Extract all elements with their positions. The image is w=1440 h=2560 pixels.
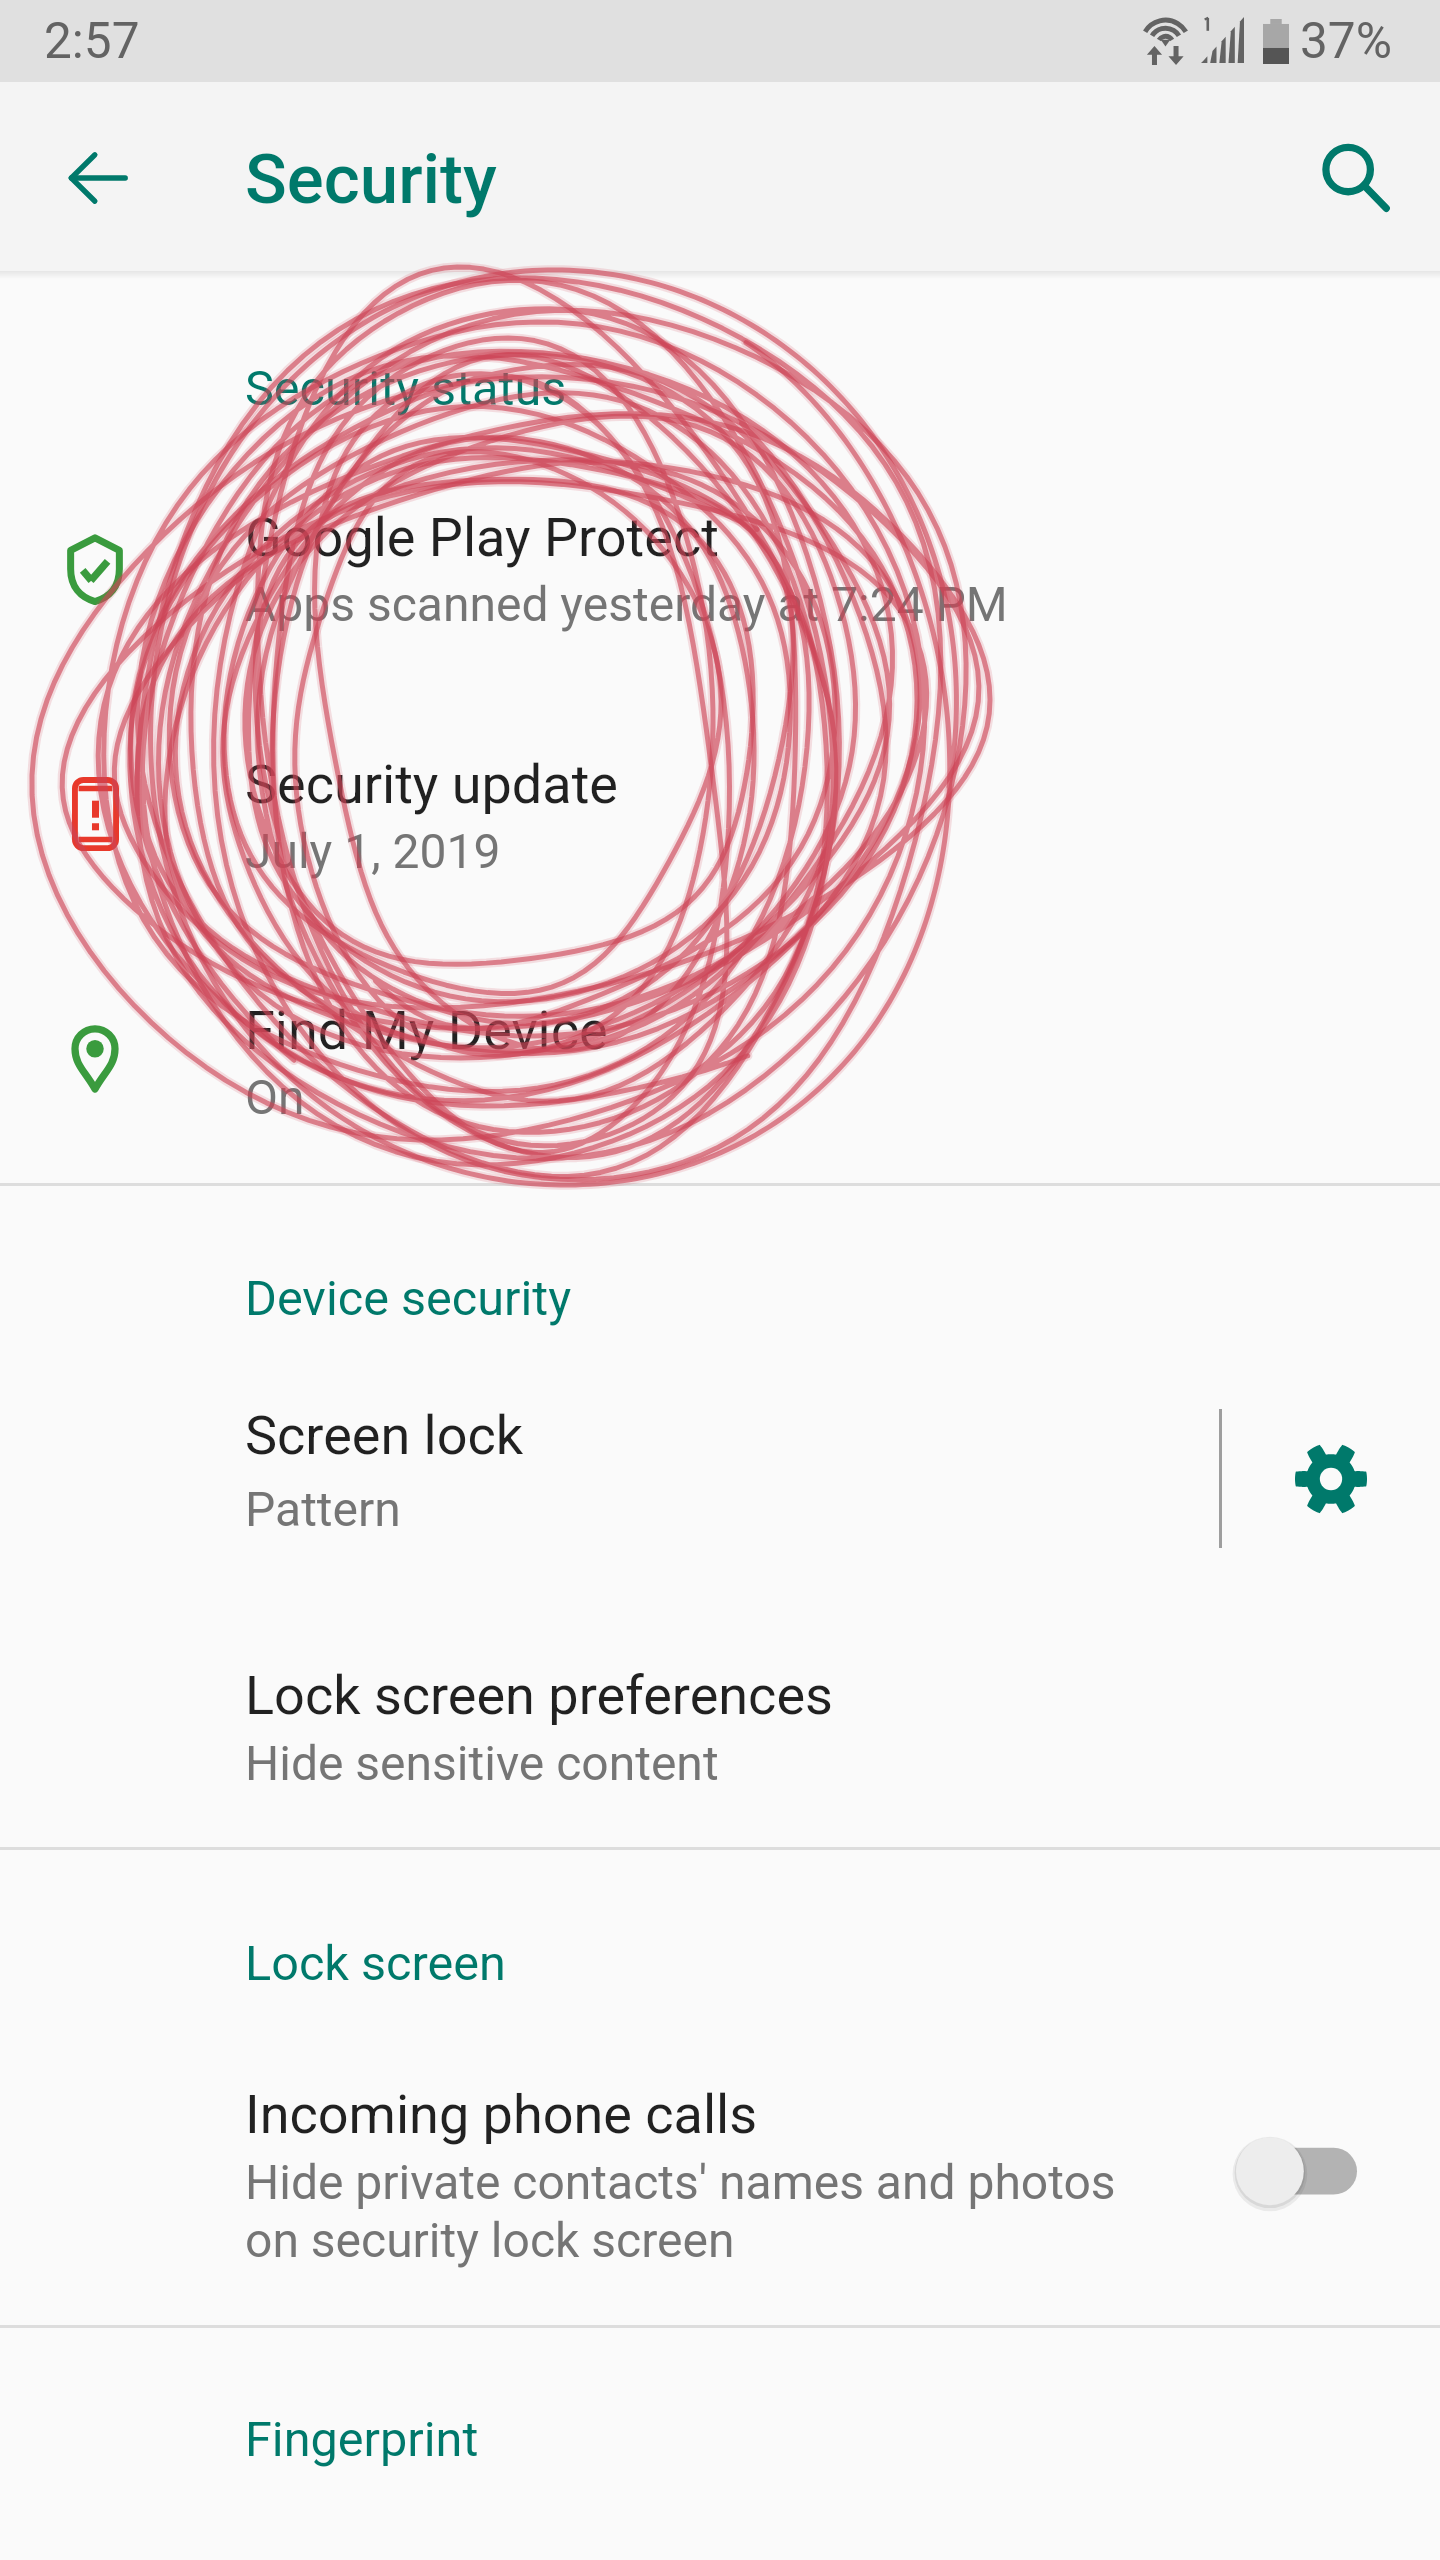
button[interactable]: Google Play Protect — [0, 448, 1440, 694]
staticText: Google Play Protect — [245, 506, 719, 569]
button[interactable]: Find My Device — [0, 940, 1440, 1183]
staticText: 2:57 — [44, 12, 140, 70]
staticText: Lock screen — [245, 1935, 506, 1992]
button[interactable]: Screen lock settings — [1258, 1406, 1404, 1552]
staticText: Hide private contacts' names and photos … — [245, 2153, 1116, 2269]
staticText: Hide sensitive content — [245, 1735, 719, 1791]
staticText: Security update — [245, 753, 618, 816]
staticText: Security status — [245, 360, 567, 417]
staticText: Screen lock — [245, 1404, 524, 1467]
staticText: Security — [245, 139, 497, 220]
staticText: Lock screen preferences — [245, 1664, 833, 1727]
button[interactable]: Search — [1285, 105, 1429, 249]
button[interactable]: Security update — [0, 694, 1440, 940]
staticText: Pattern — [245, 1481, 401, 1537]
button[interactable]: Screen lock — [0, 1360, 1210, 1606]
staticText: Find My Device — [245, 999, 608, 1062]
staticText: Apps scanned yesterday at 7:24 PM — [245, 576, 1008, 632]
staticText: On — [245, 1069, 305, 1125]
button[interactable]: Lock screen preferences — [0, 1620, 1440, 1846]
staticText: Fingerprint — [245, 2411, 479, 2468]
staticText: Device security — [245, 1270, 572, 1327]
staticText: July 1, 2019 — [245, 823, 501, 879]
button[interactable]: Incoming phone calls — [0, 2030, 1440, 2324]
staticText: Incoming phone calls — [245, 2083, 758, 2146]
staticText: 37% — [1300, 12, 1392, 70]
button[interactable]: Back — [26, 106, 170, 250]
